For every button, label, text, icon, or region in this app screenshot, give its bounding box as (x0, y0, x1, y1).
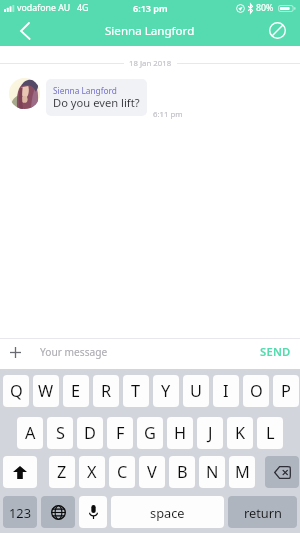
staticText: F (116, 422, 125, 444)
staticText: N (206, 461, 219, 483)
button[interactable]: J (197, 417, 223, 449)
button[interactable]: D (77, 417, 103, 449)
staticText: M (235, 461, 250, 483)
staticText: return (244, 504, 282, 521)
button[interactable]: U (183, 375, 209, 407)
button[interactable]: K (227, 417, 253, 449)
staticText: W (38, 380, 54, 402)
button[interactable]: A (17, 417, 43, 449)
button[interactable]: Backspace (265, 456, 299, 488)
button[interactable]: 123 (3, 496, 37, 528)
button[interactable]: B (169, 456, 195, 488)
staticText: U (190, 380, 202, 402)
button[interactable]: Shift (3, 456, 37, 488)
button[interactable]: S (47, 417, 73, 449)
staticText: Q (10, 380, 23, 402)
staticText: SEND (260, 344, 291, 359)
button[interactable]: L (257, 417, 283, 449)
button[interactable]: I (213, 375, 239, 407)
button[interactable]: E (63, 375, 89, 407)
button[interactable]: Back (0, 16, 42, 46)
staticText: X (87, 461, 97, 483)
staticText: J (208, 422, 213, 444)
button[interactable]: Add attachment (4, 341, 26, 363)
button[interactable]: Block user (260, 16, 300, 46)
staticText: K (235, 422, 246, 444)
staticText: S (56, 422, 65, 444)
button[interactable]: W (33, 375, 59, 407)
staticText: O (250, 380, 263, 402)
button[interactable]: Dictate (79, 496, 107, 528)
button[interactable]: F (107, 417, 133, 449)
button[interactable]: P (273, 375, 299, 407)
button[interactable]: V (139, 456, 165, 488)
button[interactable]: space (111, 496, 224, 528)
staticText: V (147, 461, 157, 483)
staticText: C (117, 461, 128, 483)
button[interactable]: Switch keyboard (41, 496, 75, 528)
staticText: Sienna Langford (105, 23, 195, 39)
button[interactable]: O (243, 375, 269, 407)
button[interactable]: X (79, 456, 105, 488)
staticText: vodafone AU (17, 2, 71, 14)
staticText: H (174, 422, 187, 444)
staticText: A (25, 422, 36, 444)
button[interactable]: Sienna Langford (46, 79, 147, 116)
staticText: D (84, 422, 96, 444)
staticText: Your message (40, 345, 108, 359)
staticText: 123 (9, 504, 31, 521)
staticText: Z (57, 461, 67, 483)
staticText: 4G (77, 2, 89, 14)
staticText: 80% (256, 2, 274, 14)
staticText: 6:11 pm (153, 109, 183, 120)
staticText: E (71, 380, 81, 402)
button[interactable]: N (199, 456, 225, 488)
button[interactable]: G (137, 417, 163, 449)
button[interactable]: Z (49, 456, 75, 488)
staticText: B (177, 461, 188, 483)
button[interactable]: SEND (256, 341, 295, 362)
staticText: G (144, 422, 156, 444)
staticText: Y (161, 380, 171, 402)
staticText: P (281, 380, 291, 402)
button[interactable]: H (167, 417, 193, 449)
button[interactable]: Q (3, 375, 29, 407)
staticText: Do you even lift? (53, 95, 140, 110)
staticText: 18 Jan 2018 (129, 58, 172, 69)
staticText: space (150, 504, 185, 521)
button[interactable]: Y (153, 375, 179, 407)
staticText: 6:13 pm (133, 2, 168, 14)
button[interactable]: T (123, 375, 149, 407)
staticText: L (266, 422, 275, 444)
staticText: Sienna Langford (53, 85, 117, 96)
button[interactable]: M (229, 456, 255, 488)
button[interactable]: R (93, 375, 119, 407)
staticText: T (131, 380, 141, 402)
staticText: I (223, 380, 229, 402)
button[interactable]: C (109, 456, 135, 488)
staticText: R (101, 380, 112, 402)
button[interactable]: return (228, 496, 297, 528)
